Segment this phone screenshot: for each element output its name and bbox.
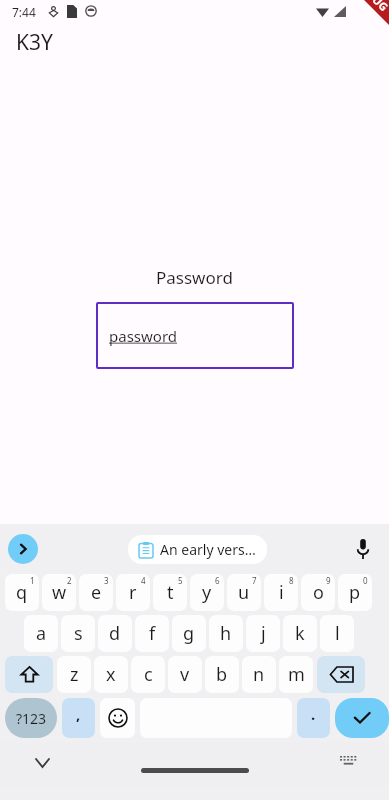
staticText: c [144,662,153,687]
button[interactable]: y [190,574,224,611]
staticText: g [183,621,195,646]
button[interactable]: f [135,615,169,652]
button[interactable]: l [320,615,354,652]
button[interactable]: Hide keyboard [31,752,53,774]
staticText: Password [156,266,233,289]
button[interactable]: m [279,656,313,693]
button[interactable]: Shift [5,656,53,693]
button[interactable]: Backspace [317,656,365,693]
staticText: 5 [178,575,183,586]
staticText: 2 [67,575,72,586]
staticText: d [109,621,121,646]
button[interactable]: Expand suggestions [8,534,38,564]
button[interactable]: d [98,615,132,652]
staticText: DEBUG [354,0,389,14]
button[interactable]: , [62,698,95,738]
staticText: q [16,580,28,605]
staticText: o [313,580,324,605]
staticText: h [220,621,232,646]
staticText: z [70,662,79,687]
staticText: 9 [326,575,331,586]
staticText: b [216,662,228,687]
staticText: ?123 [16,709,47,728]
staticText: 6 [215,575,220,586]
button[interactable]: g [172,615,206,652]
staticText: . [311,704,316,724]
staticText: m [288,662,305,687]
staticText: r [129,580,137,605]
button[interactable]: ?123 [5,698,57,738]
staticText: x [106,662,116,687]
staticText: 0 [363,575,368,586]
button[interactable]: s [61,615,95,652]
button[interactable]: h [209,615,243,652]
staticText: v [180,662,190,687]
button[interactable]: o [301,574,335,611]
button[interactable]: j [246,615,280,652]
staticText: K3Y [16,28,53,57]
staticText: i [279,580,284,605]
staticText: j [261,621,266,646]
button[interactable]: q [5,574,39,611]
staticText: 4 [141,575,146,586]
staticText: n [253,662,265,687]
button[interactable]: w [42,574,76,611]
staticText: y [202,580,212,605]
button[interactable]: Enter [335,698,389,738]
staticText: 1 [30,575,35,586]
button[interactable]: c [131,656,165,693]
staticText: l [335,621,340,646]
button[interactable]: Voice input [352,538,374,560]
staticText: a [36,621,47,646]
button[interactable]: v [168,656,202,693]
button[interactable]: i [264,574,298,611]
staticText: s [74,621,83,646]
staticText: u [238,580,250,605]
staticText: e [91,580,102,605]
button[interactable]: x [94,656,128,693]
button[interactable]: z [57,656,91,693]
staticText: , [76,704,81,724]
staticText: k [295,621,305,646]
staticText: 7:44 [12,4,36,20]
button[interactable]: t [153,574,187,611]
button[interactable]: password [96,302,294,369]
staticText: 8 [289,575,294,586]
staticText: 3 [104,575,109,586]
button[interactable]: b [205,656,239,693]
button[interactable]: a [24,615,58,652]
button[interactable]: An early vers… [128,535,267,564]
button[interactable]: u [227,574,261,611]
button[interactable]: Switch keyboard [338,754,358,768]
staticText: password [109,326,177,346]
staticText: An early vers… [160,540,256,559]
staticText: t [167,580,174,605]
button[interactable]: . [297,698,330,738]
button[interactable]: k [283,615,317,652]
staticText: f [149,621,156,646]
button[interactable]: e [79,574,113,611]
button[interactable]: n [242,656,276,693]
button[interactable]: p [338,574,372,611]
button[interactable]: Emoji [100,698,135,738]
staticText: p [349,580,361,605]
staticText: 7 [252,575,257,586]
staticText: w [52,580,67,605]
button[interactable]: r [116,574,150,611]
